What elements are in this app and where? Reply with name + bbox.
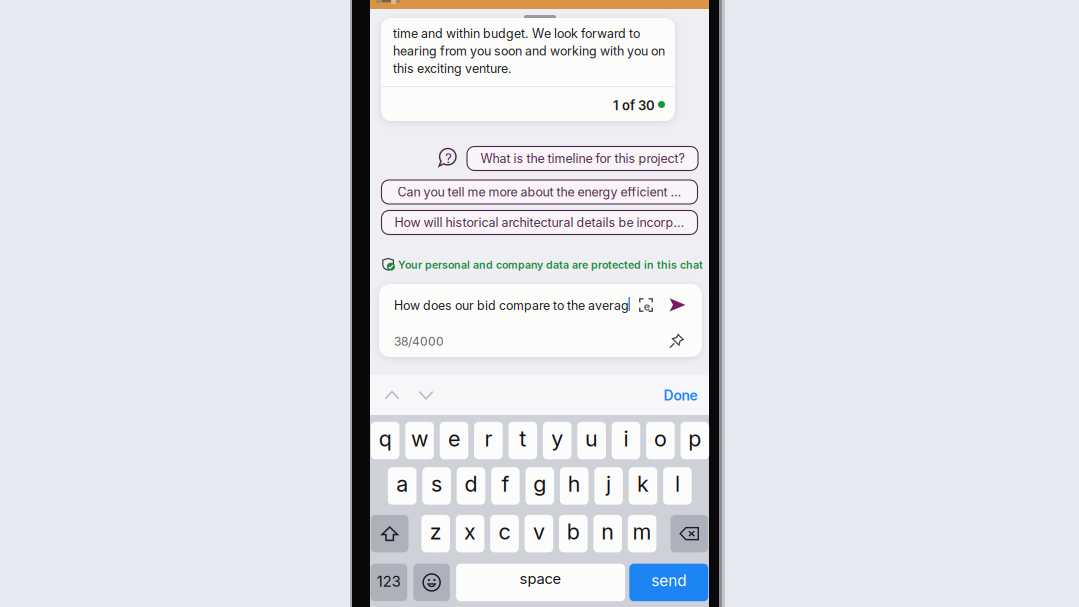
staticText: m <box>633 519 652 545</box>
button[interactable]: a <box>388 467 416 505</box>
button[interactable]: Can you tell me more about the energy ef… <box>381 180 697 204</box>
staticText: s <box>431 471 442 497</box>
button[interactable]: q <box>371 422 399 459</box>
button[interactable]: b <box>559 515 588 552</box>
staticText: send <box>651 571 686 590</box>
button[interactable]: l <box>663 467 692 505</box>
staticText: 1 of 30 <box>613 97 655 113</box>
button[interactable]: Pin <box>669 333 684 348</box>
button[interactable]: Send message <box>669 297 686 312</box>
button[interactable]: r <box>474 422 503 459</box>
button[interactable]: h <box>560 467 588 505</box>
button[interactable]: Scan text <box>639 298 653 312</box>
button[interactable]: send <box>629 564 708 601</box>
staticText: 123 <box>377 573 401 590</box>
button[interactable]: f <box>491 467 520 505</box>
button[interactable]: Done <box>641 381 697 409</box>
staticText: v <box>533 519 545 545</box>
staticText: space <box>520 570 562 587</box>
staticText: x <box>464 519 476 545</box>
staticText: b <box>567 519 580 545</box>
staticText: How does our bid compare to the averag <box>394 298 629 313</box>
button[interactable]: What is the timeline for this project? <box>467 146 698 170</box>
button[interactable]: m <box>628 515 656 552</box>
staticText: hearing from you soon and working with y… <box>393 43 665 58</box>
staticText: w <box>411 425 428 452</box>
staticText: Your personal and company data are prote… <box>398 258 703 271</box>
staticText: n <box>601 519 614 545</box>
staticText: d <box>464 471 477 497</box>
button[interactable]: Next field <box>410 381 442 409</box>
button[interactable]: s <box>422 467 451 505</box>
staticText: How will historical architectural detail… <box>394 215 684 230</box>
button[interactable]: t <box>508 422 537 459</box>
button[interactable]: o <box>646 422 675 459</box>
button[interactable]: Shift <box>371 515 408 552</box>
button[interactable]: j <box>594 467 623 505</box>
button[interactable]: space <box>456 564 625 601</box>
button[interactable]: Previous field <box>376 381 408 409</box>
button[interactable]: v <box>525 515 553 552</box>
button[interactable]: u <box>577 422 606 459</box>
button[interactable]: g <box>525 467 554 505</box>
button[interactable]: y <box>543 422 571 459</box>
staticText: j <box>606 471 611 497</box>
button[interactable]: z <box>421 515 450 552</box>
button[interactable]: Delete <box>670 515 708 552</box>
staticText: r <box>484 425 492 452</box>
button[interactable]: p <box>680 422 709 459</box>
button[interactable]: How will historical architectural detail… <box>381 210 697 234</box>
button[interactable]: d <box>457 467 485 505</box>
button[interactable]: x <box>456 515 484 552</box>
staticText: q <box>379 425 392 452</box>
staticText: o <box>654 425 667 452</box>
button[interactable]: i <box>612 422 640 459</box>
staticText: 38/4000 <box>394 334 444 348</box>
staticText: i <box>623 425 628 452</box>
staticText: a <box>396 471 408 497</box>
button[interactable]: e <box>440 422 468 459</box>
staticText: y <box>551 425 563 452</box>
staticText: ? <box>445 151 452 166</box>
button[interactable]: c <box>490 515 519 552</box>
button[interactable]: Emoji <box>413 564 450 601</box>
staticText: e <box>448 425 460 452</box>
staticText: What is the timeline for this project? <box>480 151 684 166</box>
staticText: c <box>498 519 510 545</box>
button[interactable]: w <box>405 422 434 459</box>
staticText: f <box>501 471 509 497</box>
staticText: Done <box>663 387 697 404</box>
staticText: time and within budget. We look forward … <box>393 26 640 41</box>
button[interactable]: k <box>629 467 657 505</box>
staticText: e <box>644 300 650 313</box>
staticText: z <box>430 519 442 545</box>
button[interactable]: n <box>593 515 622 552</box>
staticText: this exciting venture. <box>393 61 512 76</box>
staticText: u <box>585 425 598 452</box>
staticText: k <box>637 471 649 497</box>
button[interactable]: 123 <box>370 564 407 601</box>
staticText: h <box>568 471 581 497</box>
staticText: l <box>675 471 680 497</box>
staticText: t <box>519 425 526 452</box>
staticText: Can you tell me more about the energy ef… <box>397 184 681 199</box>
staticText: p <box>688 425 701 452</box>
staticText: g <box>533 471 546 497</box>
